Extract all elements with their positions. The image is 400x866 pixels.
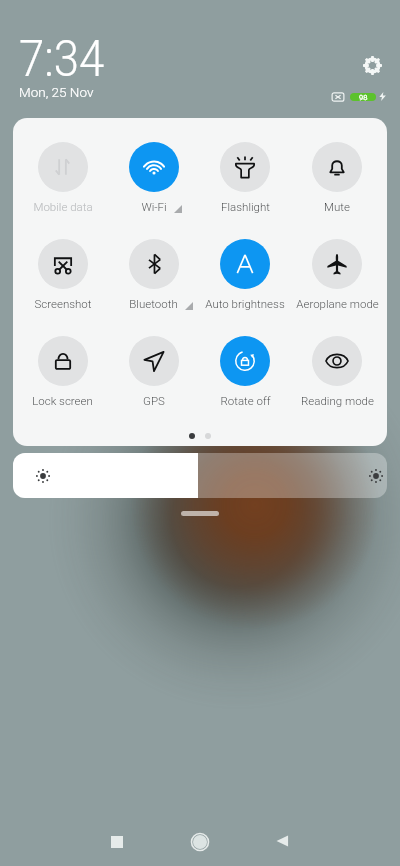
button[interactable]: Bluetooth <box>108 216 199 313</box>
button[interactable]: Rotate off <box>199 313 291 410</box>
button[interactable]: GPS <box>108 313 199 410</box>
button[interactable]: Brightness <box>13 453 387 498</box>
staticText: Flashlight <box>221 200 270 213</box>
staticText: Reading mode <box>301 394 374 407</box>
button[interactable]: Back <box>274 832 292 850</box>
staticText: Auto brightness <box>205 297 285 310</box>
button[interactable]: Home <box>188 830 212 854</box>
staticText: Wi-Fi <box>141 200 167 213</box>
button[interactable]: Aeroplane mode <box>291 216 383 313</box>
staticText: Mute <box>324 200 350 213</box>
staticText: Bluetooth <box>129 297 178 310</box>
staticText: 7:34 <box>19 30 104 89</box>
button[interactable]: Mobile data <box>17 119 108 216</box>
staticText: 98 <box>359 93 368 101</box>
button[interactable]: Settings <box>356 49 388 81</box>
button[interactable]: Mute <box>291 119 383 216</box>
button[interactable]: Flashlight <box>199 119 291 216</box>
button[interactable]: Lock screen <box>17 313 108 410</box>
staticText: Mon, 25 Nov <box>19 84 94 100</box>
staticText: Aeroplane mode <box>296 297 379 310</box>
button[interactable]: Wi-Fi <box>108 119 199 216</box>
button[interactable]: Screenshot <box>17 216 108 313</box>
staticText: GPS <box>143 394 165 407</box>
staticText: Screenshot <box>34 297 92 310</box>
staticText: Mobile data <box>33 200 93 213</box>
button[interactable]: Reading mode <box>291 313 383 410</box>
button[interactable]: Auto brightness <box>199 216 291 313</box>
staticText: Rotate off <box>220 394 271 407</box>
staticText: Lock screen <box>32 394 93 407</box>
